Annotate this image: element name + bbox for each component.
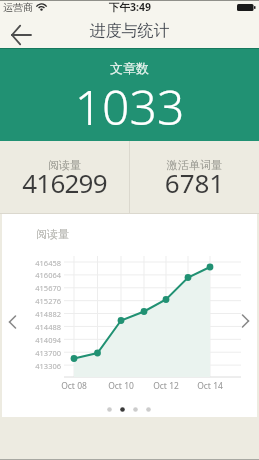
staticText: 1033 — [0, 74, 259, 139]
staticText: 阅读量 — [0, 158, 129, 172]
staticText: 413306 — [28, 361, 61, 371]
staticText: 413700 — [28, 348, 61, 358]
staticText: 414094 — [28, 335, 61, 345]
staticText: 416064 — [28, 270, 61, 280]
staticText: Oct 08 — [59, 380, 89, 392]
button[interactable] — [0, 16, 44, 53]
staticText: 进度与统计 — [0, 21, 259, 41]
staticText: 416458 — [28, 258, 61, 268]
staticText: 阅读量 — [36, 227, 69, 241]
button[interactable] — [233, 306, 257, 338]
staticText: 6781 — [130, 165, 259, 200]
staticText: 激活单词量 — [130, 158, 259, 172]
staticText: Oct 10 — [106, 380, 136, 392]
staticText: Oct 14 — [195, 380, 225, 392]
staticText: 416299 — [0, 165, 129, 200]
staticText: 415670 — [28, 283, 61, 293]
staticText: Oct 12 — [151, 380, 181, 392]
button[interactable] — [130, 141, 259, 213]
button[interactable] — [0, 141, 129, 213]
staticText: 文章数 — [0, 60, 259, 76]
staticText: 下午3:49 — [104, 0, 156, 14]
staticText: 415276 — [28, 296, 61, 306]
button[interactable] — [2, 306, 26, 338]
staticText: 414488 — [28, 322, 61, 332]
staticText: 运营商 — [3, 1, 33, 14]
staticText: 414882 — [28, 309, 61, 319]
